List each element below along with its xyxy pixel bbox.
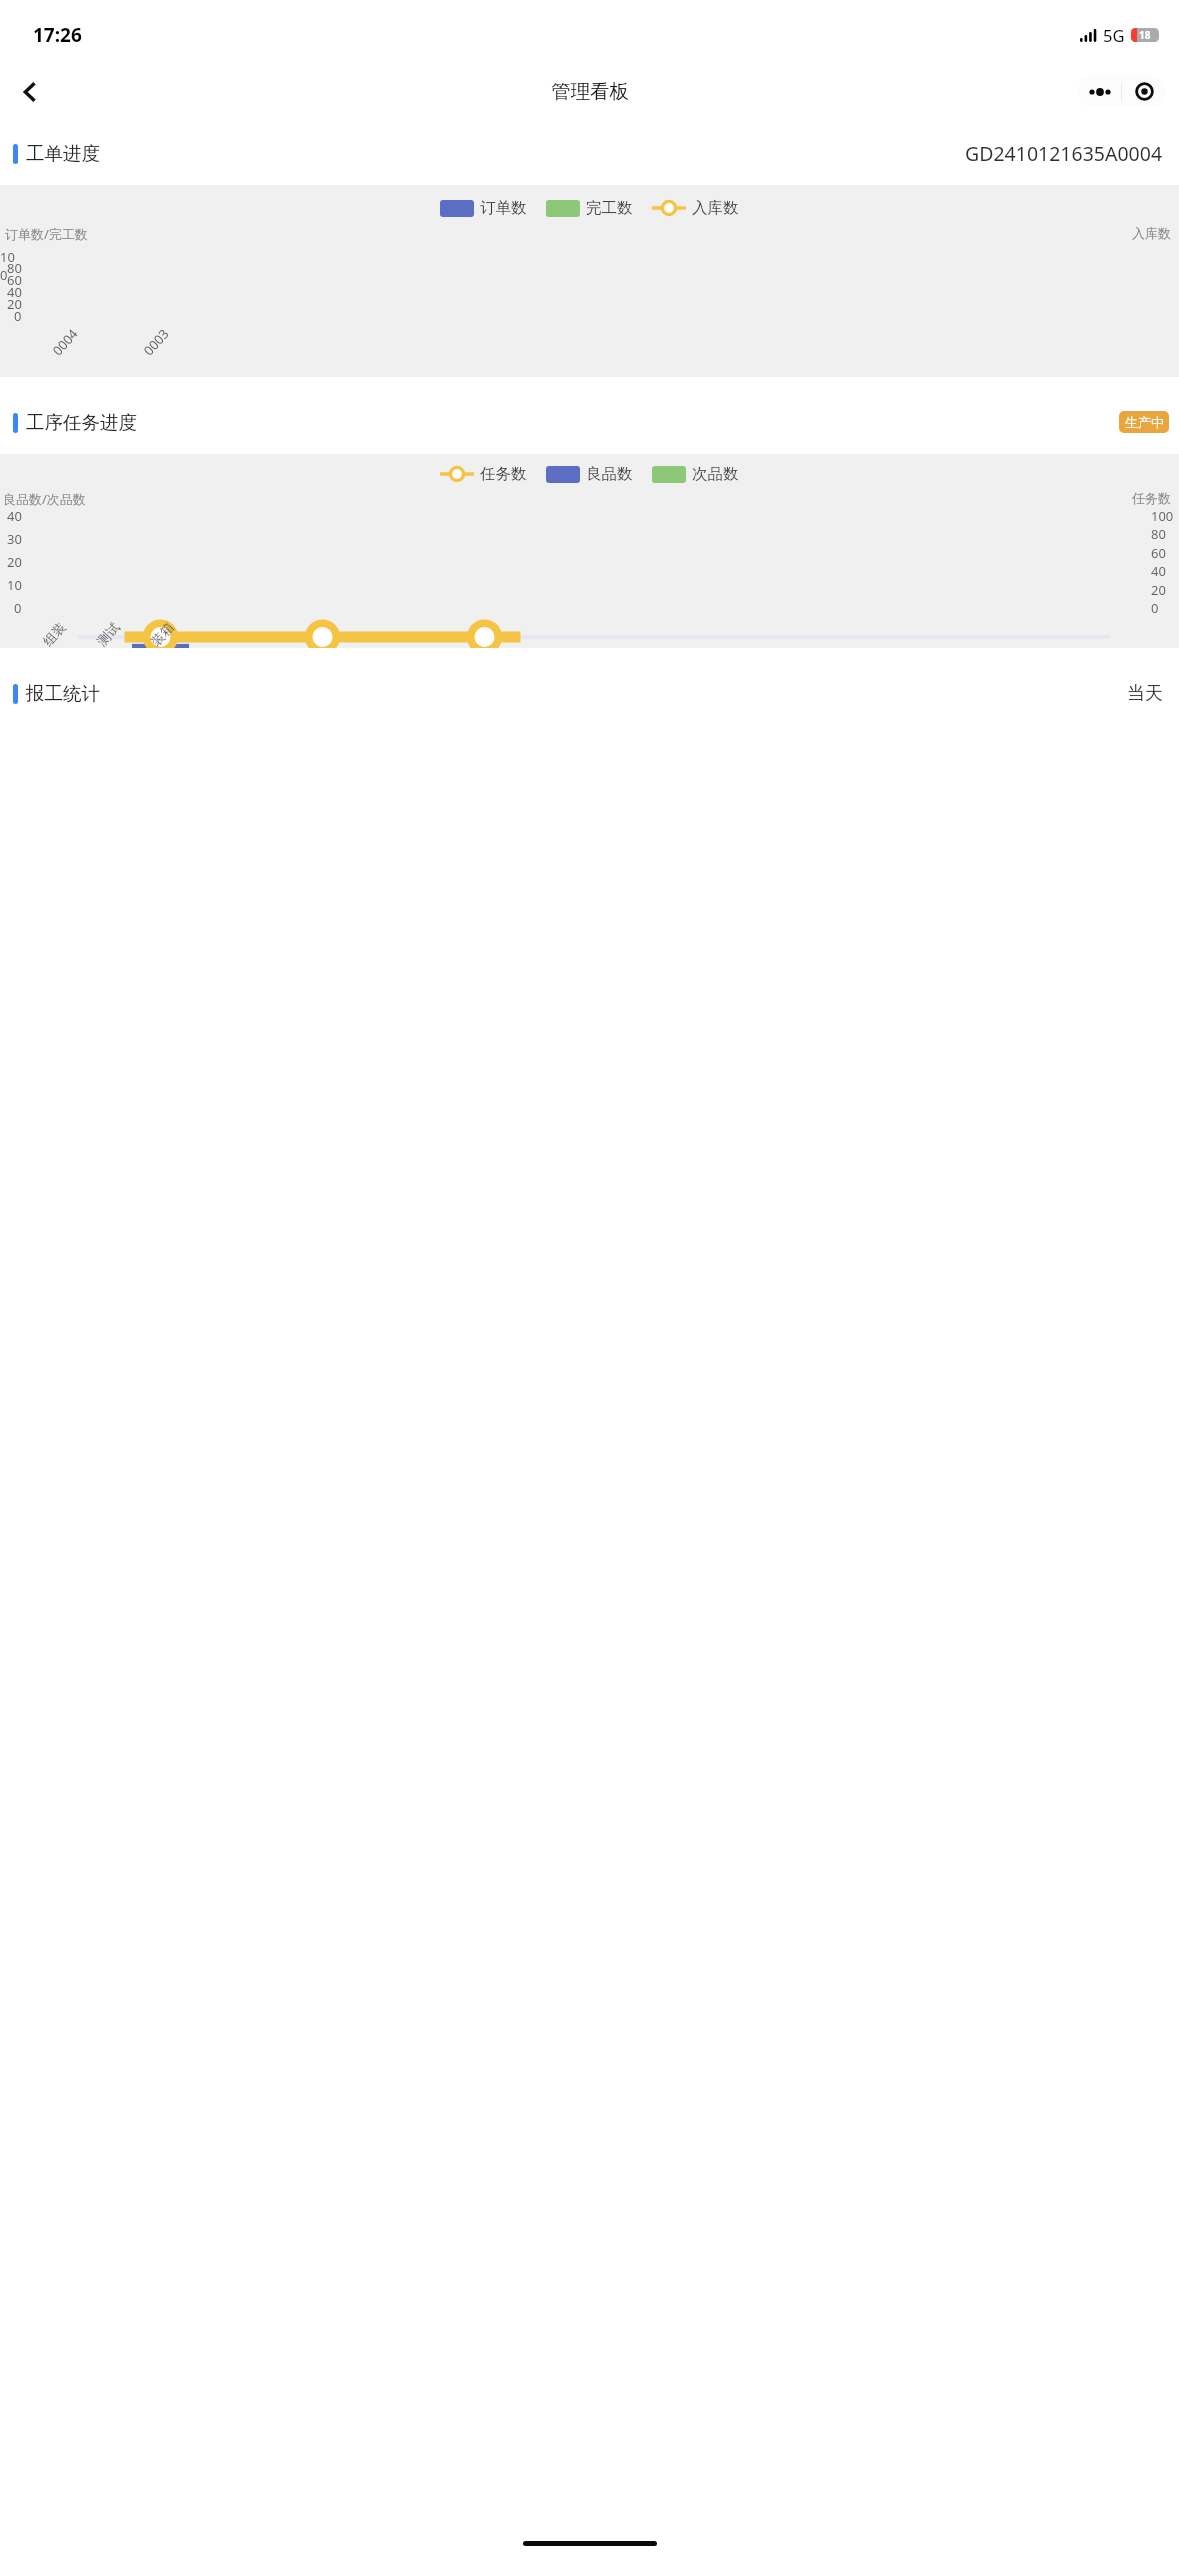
staticText: 良品数 xyxy=(586,464,633,484)
staticText: 20 xyxy=(7,553,22,571)
staticText: 80 xyxy=(1151,525,1166,543)
staticText: 100 xyxy=(0,248,22,284)
staticText: 40 xyxy=(7,283,22,301)
staticText: 0003 xyxy=(139,325,173,359)
staticText: 18 xyxy=(1139,28,1151,42)
staticText: 0 xyxy=(14,599,22,617)
staticText: 60 xyxy=(1151,544,1166,562)
staticText: 0 xyxy=(1151,599,1159,617)
staticText: 工序任务进度 xyxy=(26,411,137,434)
staticText: 5G xyxy=(1103,24,1125,46)
staticText: 30 xyxy=(7,530,22,548)
staticText: 17:26 xyxy=(33,22,82,48)
staticText: 测试 xyxy=(93,619,123,649)
staticText: 工单进度 xyxy=(26,142,100,165)
button[interactable]: More xyxy=(1078,75,1121,108)
staticText: 入库数 xyxy=(1132,225,1171,241)
staticText: 40 xyxy=(1151,562,1166,580)
staticText: 0004 xyxy=(48,325,82,359)
staticText: 组装 xyxy=(39,619,69,649)
staticText: 100 xyxy=(1151,507,1174,525)
staticText: 当天 xyxy=(1127,682,1163,705)
button[interactable]: Close xyxy=(1122,75,1166,108)
staticText: 生产中 xyxy=(1125,414,1164,430)
staticText: 订单数 xyxy=(480,198,527,218)
staticText: 装箱 xyxy=(147,619,177,649)
staticText: 订单数/完工数 xyxy=(5,225,88,243)
button[interactable]: 生产中 xyxy=(1119,411,1169,433)
staticText: 任务数 xyxy=(480,464,527,484)
staticText: 次品数 xyxy=(692,464,739,484)
staticText: 10 xyxy=(7,576,22,594)
staticText: 良品数/次品数 xyxy=(3,490,86,508)
staticText: 20 xyxy=(1151,581,1166,599)
staticText: 入库数 xyxy=(692,198,739,218)
staticText: 管理看板 xyxy=(551,79,629,104)
staticText: 任务数 xyxy=(1132,490,1171,506)
staticText: 60 xyxy=(7,271,22,289)
staticText: 20 xyxy=(7,295,22,313)
staticText: 0 xyxy=(14,307,22,325)
staticText: 报工统计 xyxy=(26,682,100,705)
staticText: 80 xyxy=(7,259,22,277)
staticText: 完工数 xyxy=(586,198,633,218)
button[interactable]: Back xyxy=(8,69,54,115)
staticText: 40 xyxy=(7,507,22,525)
staticText: GD2410121635A0004 xyxy=(965,140,1163,167)
